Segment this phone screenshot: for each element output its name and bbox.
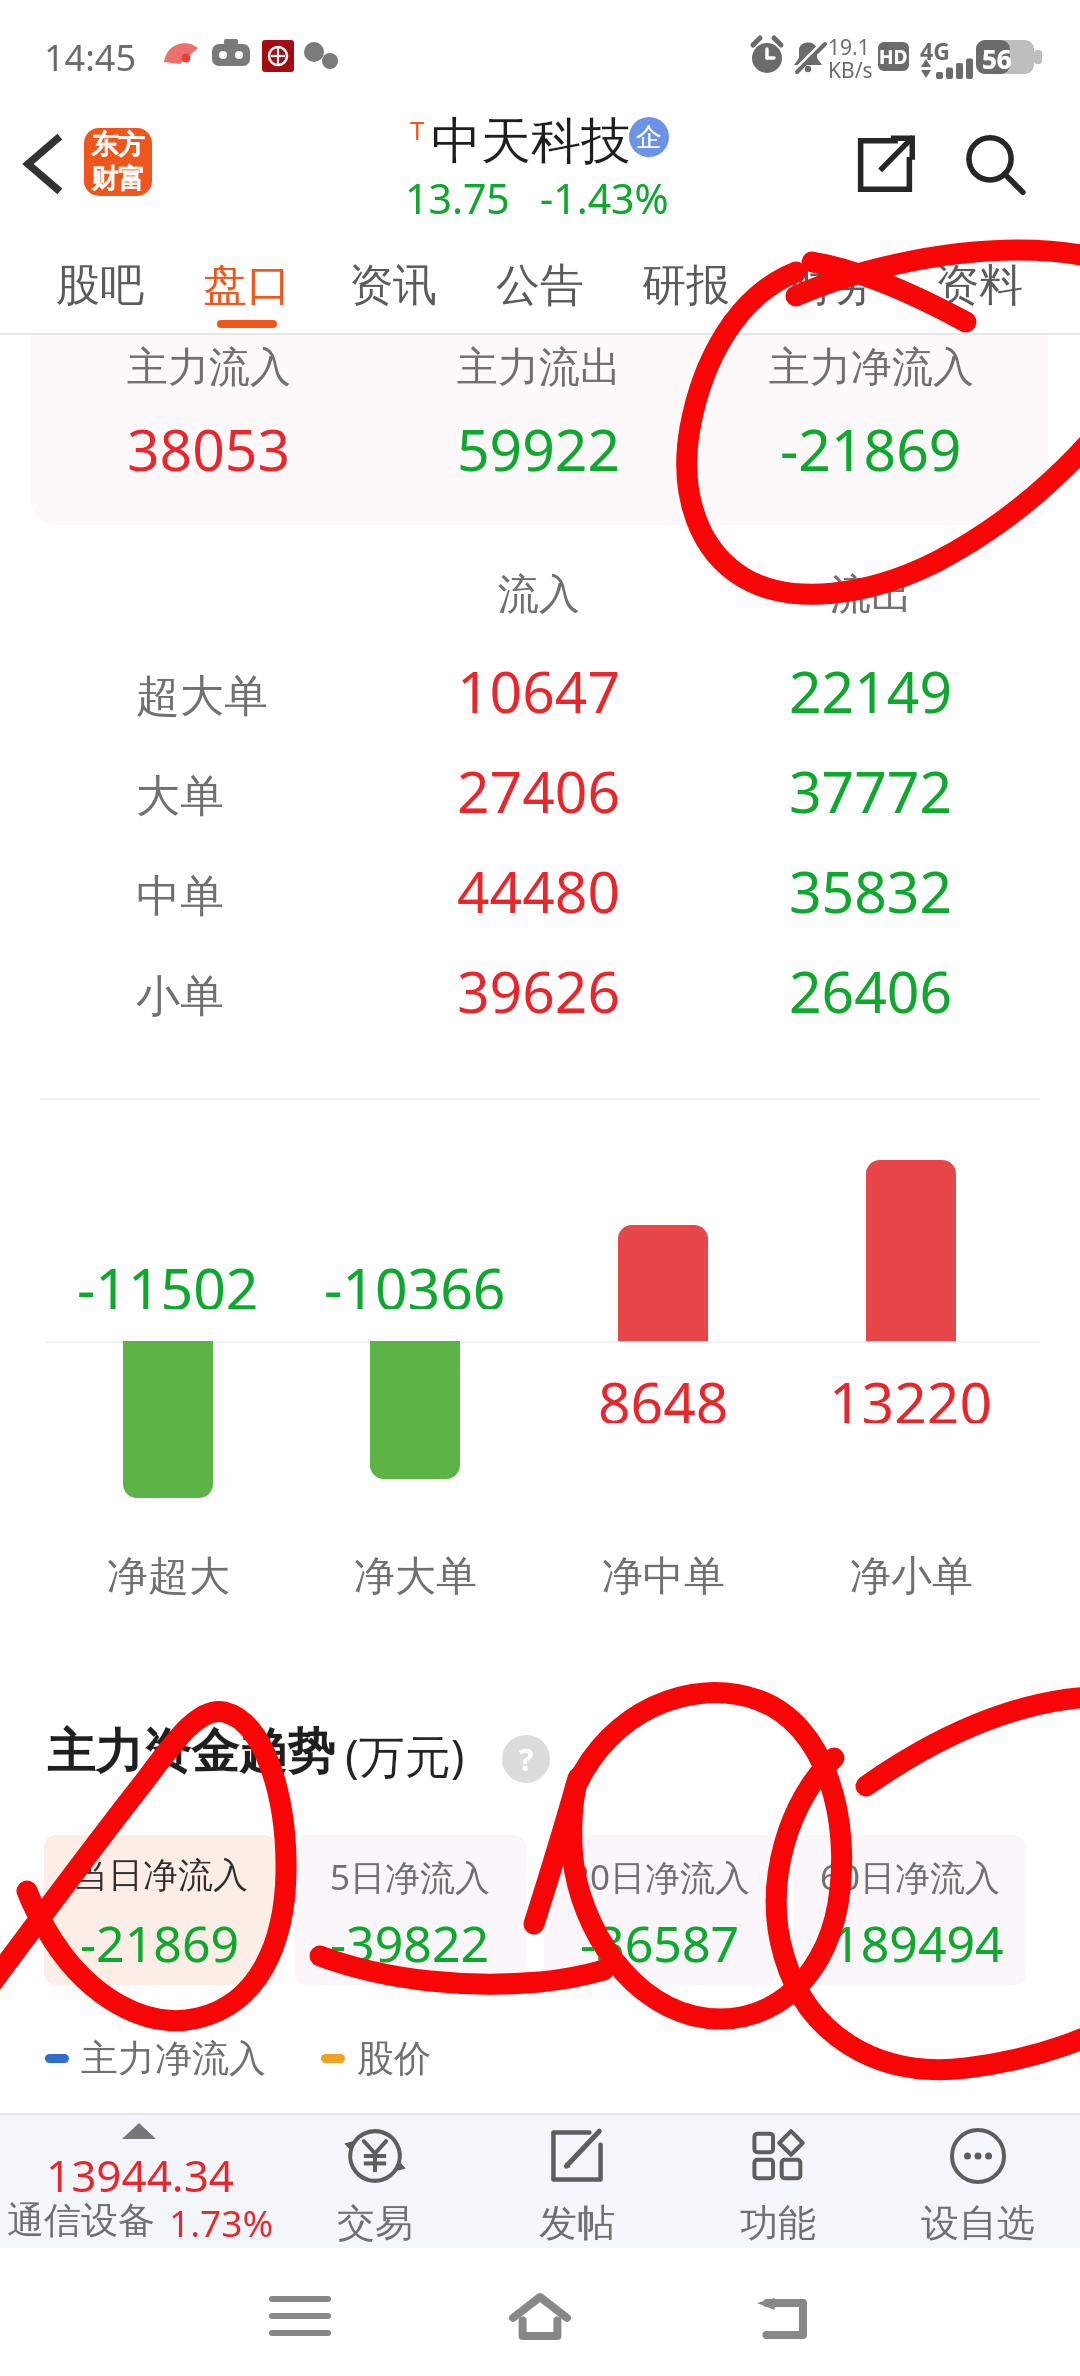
- button[interactable]: 研报: [613, 229, 759, 333]
- staticText: 流出: [830, 569, 912, 621]
- staticText: 资料: [935, 258, 1023, 313]
- button[interactable]: 20日净流入: [544, 1835, 776, 1985]
- staticText: 财务: [789, 258, 877, 313]
- staticText: 盘口: [203, 258, 291, 313]
- button[interactable]: Home: [490, 2267, 590, 2367]
- staticText: 净超大: [107, 1551, 230, 1603]
- staticText: 净中单: [602, 1551, 725, 1603]
- button[interactable]: 功能: [678, 2115, 878, 2248]
- staticText: 主力流出: [457, 342, 621, 394]
- staticText: 股吧: [56, 258, 144, 313]
- button[interactable]: 财务: [760, 229, 906, 333]
- button[interactable]: Share: [840, 120, 930, 210]
- staticText: 22149: [789, 652, 953, 718]
- staticText: 56: [982, 41, 1012, 75]
- staticText: 当日净流入: [73, 1853, 248, 1897]
- button[interactable]: Search: [950, 120, 1040, 210]
- staticText: 东方: [91, 128, 145, 162]
- staticText: 小单: [136, 969, 224, 1024]
- staticText: 主力净流入: [81, 2035, 266, 2082]
- staticText: 20日净流入: [570, 1853, 751, 1901]
- staticText: 主力流入: [127, 342, 291, 394]
- button[interactable]: 发帖: [477, 2115, 677, 2248]
- staticText: 19.1: [828, 33, 870, 62]
- button[interactable]: East Money: [84, 128, 152, 196]
- staticText: 44480: [457, 852, 621, 918]
- staticText: 交易: [337, 2199, 413, 2247]
- staticText: 流入: [498, 569, 580, 621]
- staticText: 通信设备: [7, 2197, 155, 2243]
- staticText: 14:45: [44, 33, 137, 82]
- staticText: -189494: [816, 1909, 1004, 1977]
- staticText: 35832: [789, 852, 953, 918]
- staticText: HD: [879, 44, 908, 70]
- staticText: 39626: [457, 952, 621, 1018]
- staticText: 企: [636, 121, 662, 154]
- button[interactable]: 设自选: [878, 2115, 1078, 2248]
- staticText: 27406: [457, 752, 621, 818]
- staticText: 财富: [91, 162, 145, 196]
- button[interactable]: 60日净流入: [794, 1835, 1026, 1985]
- staticText: -10366: [324, 1249, 506, 1309]
- staticText: 8648: [598, 1363, 729, 1423]
- staticText: 5日净流入: [330, 1853, 491, 1901]
- staticText: -21869: [780, 410, 962, 480]
- staticText: 股价: [357, 2035, 431, 2082]
- button[interactable]: Back: [730, 2267, 830, 2367]
- button[interactable]: 5日净流入: [294, 1835, 526, 1985]
- staticText: 13944.34: [46, 2145, 234, 2193]
- staticText: 37772: [789, 752, 953, 818]
- staticText: 中天科技: [431, 110, 631, 173]
- staticText: 59922: [457, 410, 621, 480]
- staticText: -36587: [580, 1909, 740, 1977]
- staticText: 4G: [920, 35, 950, 66]
- staticText: 净大单: [354, 1551, 477, 1603]
- staticText: -1.43%: [540, 170, 669, 226]
- button[interactable]: 资讯: [320, 229, 466, 333]
- staticText: 主力资金趋势: [47, 1722, 335, 1782]
- button[interactable]: 盘口: [174, 229, 320, 333]
- staticText: 13220: [829, 1363, 993, 1423]
- button[interactable]: 交易: [275, 2115, 475, 2248]
- staticText: 设自选: [921, 2199, 1035, 2247]
- staticText: 资讯: [349, 258, 437, 313]
- staticText: 超大单: [136, 669, 268, 724]
- staticText: 1.73%: [169, 2197, 274, 2243]
- staticText: -39822: [330, 1909, 490, 1977]
- button[interactable]: 公告: [467, 229, 613, 333]
- staticText: 38053: [127, 410, 291, 480]
- staticText: -11502: [77, 1249, 259, 1309]
- staticText: -21869: [80, 1909, 240, 1977]
- staticText: 60日净流入: [820, 1853, 1001, 1901]
- button[interactable]: 13944.34: [0, 2113, 280, 2248]
- staticText: 发帖: [539, 2199, 615, 2247]
- staticText: 研报: [642, 258, 730, 313]
- staticText: KB/s: [828, 56, 873, 85]
- staticText: 13.75: [405, 170, 510, 226]
- staticText: 大单: [136, 769, 224, 824]
- staticText: ?: [519, 1739, 534, 1780]
- staticText: 26406: [789, 952, 953, 1018]
- staticText: 功能: [740, 2199, 816, 2247]
- button[interactable]: Recents: [250, 2266, 350, 2366]
- staticText: 公告: [496, 258, 584, 313]
- staticText: 主力净流入: [769, 342, 974, 394]
- staticText: 10647: [457, 652, 621, 718]
- staticText: T: [410, 112, 425, 147]
- button[interactable]: 资料: [906, 229, 1052, 333]
- button[interactable]: Back: [0, 118, 84, 210]
- staticText: (万元): [345, 1724, 465, 1787]
- button[interactable]: 股吧: [27, 229, 173, 333]
- staticText: 中单: [136, 869, 224, 924]
- button[interactable]: 当日净流入: [44, 1835, 276, 1985]
- button[interactable]: Help: [502, 1735, 550, 1783]
- staticText: 净小单: [850, 1551, 973, 1603]
